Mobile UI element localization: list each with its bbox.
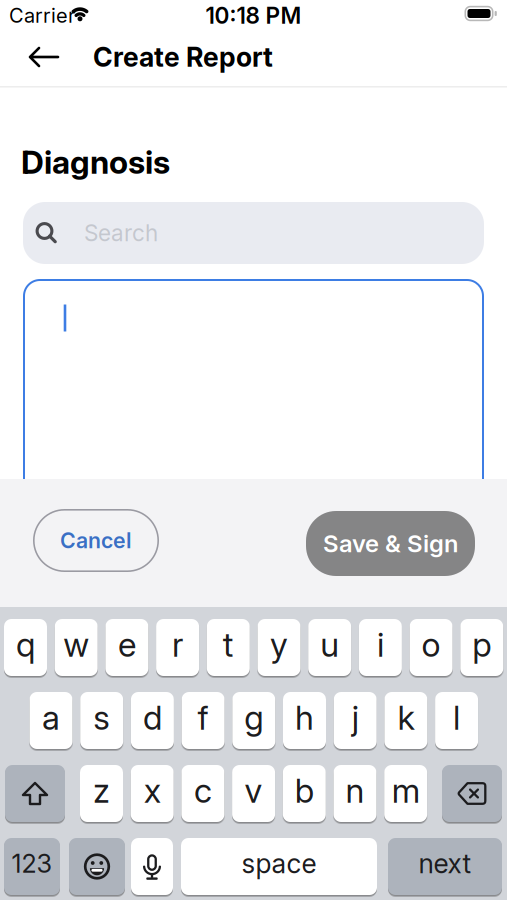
button[interactable]: Cancel: [33, 509, 159, 572]
staticText: 10:18 PM: [205, 2, 301, 29]
button[interactable]: f: [182, 692, 225, 749]
staticText: t: [223, 625, 234, 664]
button[interactable]: 123: [4, 838, 60, 895]
button[interactable]: Delete: [442, 765, 502, 822]
button[interactable]: k: [384, 692, 427, 749]
staticText: q: [16, 625, 35, 664]
staticText: o: [422, 625, 441, 664]
staticText: d: [143, 698, 162, 737]
button[interactable]: d: [131, 692, 174, 749]
staticText: i: [377, 625, 384, 664]
staticText: s: [93, 698, 110, 737]
staticText: next: [418, 848, 471, 879]
staticText: c: [194, 771, 212, 810]
staticText: a: [42, 698, 60, 737]
button[interactable]: s: [80, 692, 123, 749]
staticText: j: [352, 698, 359, 737]
button[interactable]: w: [55, 619, 98, 676]
button[interactable]: c: [181, 765, 224, 822]
button[interactable]: Save & Sign: [306, 511, 475, 576]
staticText: 123: [11, 849, 52, 878]
staticText: z: [93, 771, 110, 810]
staticText: Search: [84, 220, 158, 246]
staticText: w: [63, 625, 89, 664]
staticText: n: [345, 771, 364, 810]
button[interactable]: g: [232, 692, 275, 749]
button[interactable]: r: [156, 619, 199, 676]
button[interactable]: l: [435, 692, 478, 749]
button[interactable]: h: [283, 692, 326, 749]
staticText: v: [245, 771, 263, 810]
button[interactable]: v: [232, 765, 275, 822]
button[interactable]: t: [207, 619, 250, 676]
staticText: b: [295, 771, 314, 810]
staticText: Carrier: [9, 4, 75, 27]
staticText: space: [241, 848, 316, 879]
staticText: u: [320, 625, 339, 664]
staticText: y: [270, 625, 288, 664]
staticText: Save & Sign: [323, 529, 458, 558]
staticText: e: [118, 625, 136, 664]
button[interactable]: m: [384, 765, 427, 822]
button[interactable]: i: [359, 619, 402, 676]
button[interactable]: b: [283, 765, 326, 822]
staticText: x: [144, 771, 161, 810]
button[interactable]: e: [105, 619, 148, 676]
button[interactable]: j: [334, 692, 377, 749]
staticText: g: [244, 698, 263, 737]
button[interactable]: Back: [22, 39, 66, 75]
staticText: Create Report: [93, 41, 273, 73]
button[interactable]: o: [410, 619, 453, 676]
button[interactable]: q: [4, 619, 47, 676]
button[interactable]: Dictation: [131, 838, 173, 895]
button[interactable]: space: [181, 838, 377, 895]
staticText: f: [198, 698, 209, 737]
button[interactable]: Search: [23, 202, 484, 264]
button[interactable]: next: [388, 838, 502, 895]
button[interactable]: Diagnosis text field: [23, 279, 484, 539]
staticText: p: [472, 625, 491, 664]
button[interactable]: Emoji: [69, 838, 125, 895]
staticText: Diagnosis: [21, 143, 170, 181]
staticText: h: [295, 698, 314, 737]
button[interactable]: y: [257, 619, 300, 676]
staticText: Cancel: [60, 528, 132, 553]
button[interactable]: x: [131, 765, 174, 822]
staticText: m: [392, 771, 420, 810]
button[interactable]: z: [80, 765, 123, 822]
button[interactable]: Shift: [5, 765, 65, 822]
staticText: r: [172, 625, 183, 664]
button[interactable]: p: [460, 619, 503, 676]
staticText: l: [453, 698, 460, 737]
button[interactable]: n: [333, 765, 376, 822]
button[interactable]: a: [29, 692, 72, 749]
button[interactable]: u: [308, 619, 351, 676]
staticText: k: [397, 698, 414, 737]
